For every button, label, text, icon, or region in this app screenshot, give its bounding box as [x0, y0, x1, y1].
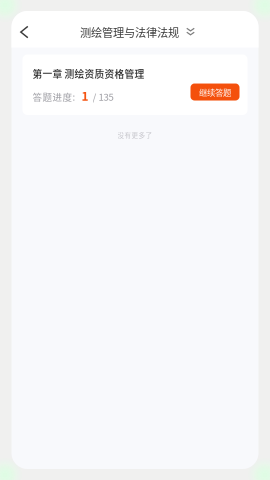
button[interactable]: 继续答题	[190, 83, 239, 100]
staticText: 答题进度:	[32, 90, 75, 103]
staticText: 没有更多了	[117, 130, 152, 140]
staticText: 测绘管理与法律法规	[80, 24, 179, 40]
staticText: 第一章 测绘资质资格管理	[32, 66, 144, 81]
staticText: / 135	[92, 90, 113, 103]
staticText: 继续答题	[199, 86, 231, 98]
staticText: 1	[81, 87, 88, 104]
button[interactable]: Switch subject	[181, 22, 200, 41]
button[interactable]: Back	[11, 20, 42, 44]
